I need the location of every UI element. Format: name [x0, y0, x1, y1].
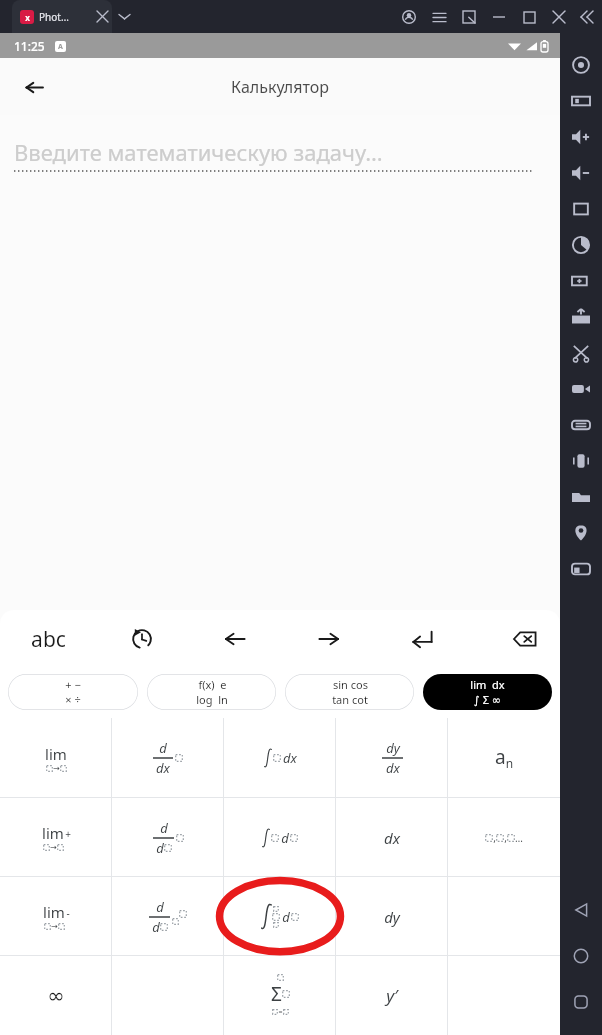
button[interactable]: Screenshot — [560, 191, 602, 227]
staticText: , — [504, 831, 507, 845]
staticText: d — [281, 829, 289, 847]
button[interactable]: Settings — [560, 407, 602, 443]
staticText: d — [156, 839, 164, 857]
button[interactable]: Recents — [560, 979, 602, 1025]
staticText: Калькулятор — [231, 76, 329, 98]
button[interactable]: Camera — [560, 83, 602, 119]
button[interactable]: + − — [8, 674, 138, 710]
staticText: dx — [156, 759, 170, 777]
staticText: abc — [31, 625, 66, 654]
staticText: … — [515, 831, 523, 845]
button[interactable]: History — [96, 610, 188, 668]
button[interactable]: New line — [376, 610, 468, 668]
button[interactable]: Add — [560, 263, 602, 299]
button[interactable]: Minimize — [484, 2, 514, 32]
button[interactable]: Move right — [282, 610, 376, 668]
staticText: f(x) e — [198, 677, 227, 692]
staticText: x — [25, 12, 30, 23]
button[interactable]: sin cos — [285, 674, 414, 710]
staticText: y′ — [386, 984, 398, 1007]
staticText: sin cos — [333, 677, 368, 692]
button[interactable]: d — [224, 877, 336, 956]
button[interactable]: Power — [560, 227, 602, 263]
button[interactable]: , — [448, 798, 560, 877]
button[interactable]: Rotate — [560, 443, 602, 479]
button[interactable]: Record — [560, 371, 602, 407]
staticText: log ln — [196, 692, 228, 707]
button[interactable]: Σ — [224, 956, 336, 1035]
staticText: lim — [43, 902, 65, 922]
staticText: , — [493, 831, 496, 845]
button[interactable]: Resize — [560, 551, 602, 587]
button[interactable]: Move left — [188, 610, 282, 668]
button[interactable]: Detach — [454, 2, 484, 32]
button[interactable]: Volume up — [560, 119, 602, 155]
staticText: × ÷ — [65, 692, 81, 707]
button[interactable]: Volume down — [560, 155, 602, 191]
staticText: → — [53, 764, 60, 773]
staticText: → — [50, 843, 57, 852]
button[interactable]: Close window — [544, 2, 574, 32]
button[interactable]: Location — [560, 515, 602, 551]
staticText: lim dx — [470, 677, 505, 692]
staticText: dx — [386, 759, 400, 777]
staticText: - — [66, 906, 70, 920]
button[interactable]: Back — [10, 63, 58, 111]
staticText: Phot… — [39, 10, 69, 24]
staticText: d — [156, 898, 164, 916]
staticText: = — [278, 1007, 283, 1017]
staticText: d — [152, 918, 160, 936]
button[interactable]: Extended controls — [560, 47, 602, 83]
button[interactable]: an — [448, 718, 560, 798]
button[interactable]: d — [112, 877, 224, 956]
button[interactable]: d — [224, 798, 336, 877]
button[interactable]: Close tab — [86, 0, 119, 33]
staticText: ∫ Σ ∞ — [474, 692, 501, 707]
button[interactable]: y′ — [336, 956, 448, 1035]
staticText: Введите математическую задачу… — [14, 137, 383, 167]
staticText: d — [159, 739, 167, 757]
button[interactable]: Back — [560, 887, 602, 933]
button[interactable]: dx — [224, 718, 336, 798]
button[interactable]: x — [12, 0, 112, 33]
staticText: lim — [45, 744, 67, 764]
button[interactable]: dx — [336, 798, 448, 877]
staticText: A — [58, 42, 63, 52]
staticText: tan cot — [332, 692, 368, 707]
staticText: + — [65, 827, 71, 841]
button[interactable]: dy — [336, 877, 448, 956]
button[interactable] — [448, 877, 560, 956]
button[interactable]: lim dx — [423, 674, 552, 710]
staticText: dx — [384, 828, 400, 848]
button[interactable]: dy — [336, 718, 448, 798]
button[interactable]: abc — [0, 610, 96, 668]
staticText: d — [160, 819, 168, 837]
button[interactable]: Collapse — [574, 4, 600, 30]
button[interactable]: Home — [560, 933, 602, 979]
staticText: → — [51, 922, 58, 931]
button[interactable]: Files — [560, 479, 602, 515]
staticText: d — [282, 908, 290, 926]
button[interactable]: Tab list — [108, 0, 141, 33]
button[interactable]: d — [112, 718, 224, 798]
staticText: dy — [384, 907, 400, 927]
staticText: dy — [386, 739, 400, 757]
button[interactable]: lim — [0, 877, 112, 956]
button[interactable]: Backspace — [490, 610, 560, 668]
button[interactable]: lim — [0, 798, 112, 877]
button[interactable]: Menu — [424, 2, 454, 32]
button[interactable]: Account — [394, 2, 424, 32]
button[interactable]: Snip — [560, 335, 602, 371]
staticText: an — [495, 744, 514, 772]
button[interactable]: f(x) e — [147, 674, 276, 710]
staticText: 11:25 — [14, 38, 45, 54]
button[interactable]: Install APK — [560, 299, 602, 335]
button[interactable]: lim — [0, 718, 112, 798]
button[interactable]: d — [112, 798, 224, 877]
staticText: + − — [65, 677, 81, 692]
button[interactable]: Maximize — [514, 2, 544, 32]
button[interactable]: ∞ — [0, 956, 112, 1035]
staticText: lim — [42, 823, 64, 843]
